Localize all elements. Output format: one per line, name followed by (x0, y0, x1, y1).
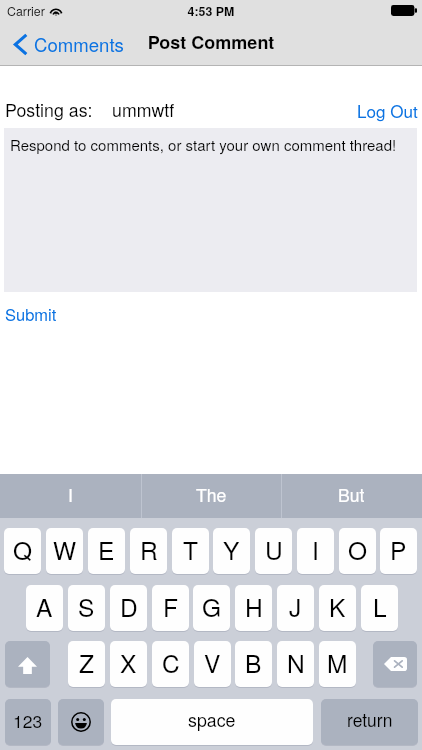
staticText: H (245, 589, 263, 624)
staticText: Posting as: (5, 97, 93, 122)
button[interactable]: B (235, 641, 272, 687)
staticText: Y (223, 532, 240, 567)
staticText: Carrier (7, 2, 45, 20)
staticText: Log Out (357, 98, 418, 122)
button[interactable]: Q (4, 528, 41, 574)
staticText: ummwtf (112, 97, 175, 122)
button[interactable]: Log Out (345, 96, 422, 122)
button[interactable]: W (46, 528, 83, 574)
staticText: Q (13, 532, 33, 567)
staticText: W (53, 532, 77, 567)
staticText: N (287, 645, 305, 680)
button[interactable]: M (319, 641, 356, 687)
staticText: Comments (34, 31, 124, 58)
button[interactable]: H (235, 585, 272, 631)
button[interactable]: J (277, 585, 314, 631)
button[interactable]: Backspace (373, 641, 417, 687)
button[interactable]: X (110, 641, 147, 687)
staticText: Submit (5, 302, 57, 326)
staticText: K (329, 589, 346, 624)
staticText: Z (79, 645, 94, 680)
staticText: O (348, 532, 368, 567)
button[interactable]: N (277, 641, 314, 687)
staticText: X (120, 645, 137, 680)
staticText: I (312, 532, 319, 567)
staticText: P (390, 532, 407, 567)
staticText: 4:53 PM (0, 2, 422, 20)
staticText: Post Comment (0, 29, 422, 55)
staticText: D (120, 589, 138, 624)
button[interactable]: G (193, 585, 230, 631)
button[interactable]: O (339, 528, 376, 574)
button[interactable]: Submit (0, 300, 62, 328)
button[interactable]: C (152, 641, 189, 687)
staticText: M (327, 645, 348, 680)
staticText: I (68, 482, 73, 507)
staticText: G (202, 589, 222, 624)
staticText: T (183, 532, 198, 567)
button[interactable]: F (152, 585, 189, 631)
button[interactable]: L (361, 585, 398, 631)
staticText: E (98, 532, 115, 567)
staticText: return (347, 707, 393, 732)
button[interactable]: I (297, 528, 334, 574)
button[interactable]: I (0, 474, 141, 518)
button[interactable]: Z (68, 641, 105, 687)
button[interactable]: S (68, 585, 105, 631)
button[interactable]: 123 (5, 699, 51, 745)
staticText: space (188, 707, 236, 732)
button[interactable]: The (141, 474, 282, 518)
staticText: U (265, 532, 283, 567)
staticText: But (338, 482, 365, 507)
button[interactable]: Comments (6, 20, 127, 65)
button[interactable]: Emoji (58, 699, 104, 745)
button[interactable]: return (321, 699, 418, 745)
staticText: S (78, 589, 95, 624)
button[interactable]: K (319, 585, 356, 631)
staticText: R (140, 532, 158, 567)
button[interactable]: D (110, 585, 147, 631)
staticText: C (162, 645, 180, 680)
button[interactable]: U (255, 528, 292, 574)
staticText: 123 (13, 708, 43, 733)
staticText: Respond to comments, or start your own c… (10, 134, 397, 155)
staticText: J (289, 589, 302, 624)
button[interactable]: Respond to comments, or start your own c… (4, 128, 417, 292)
staticText: B (245, 645, 262, 680)
button[interactable]: But (281, 474, 422, 518)
button[interactable]: E (88, 528, 125, 574)
staticText: V (204, 645, 221, 680)
button[interactable]: V (194, 641, 231, 687)
staticText: The (196, 482, 227, 507)
staticText: L (373, 589, 387, 624)
button[interactable]: R (130, 528, 167, 574)
button[interactable]: space (111, 699, 313, 745)
button[interactable]: Y (213, 528, 250, 574)
button[interactable]: A (26, 585, 63, 631)
button[interactable]: P (380, 528, 417, 574)
button[interactable]: T (172, 528, 209, 574)
staticText: F (163, 589, 178, 624)
button[interactable]: Shift (5, 641, 50, 687)
staticText: A (36, 589, 53, 624)
